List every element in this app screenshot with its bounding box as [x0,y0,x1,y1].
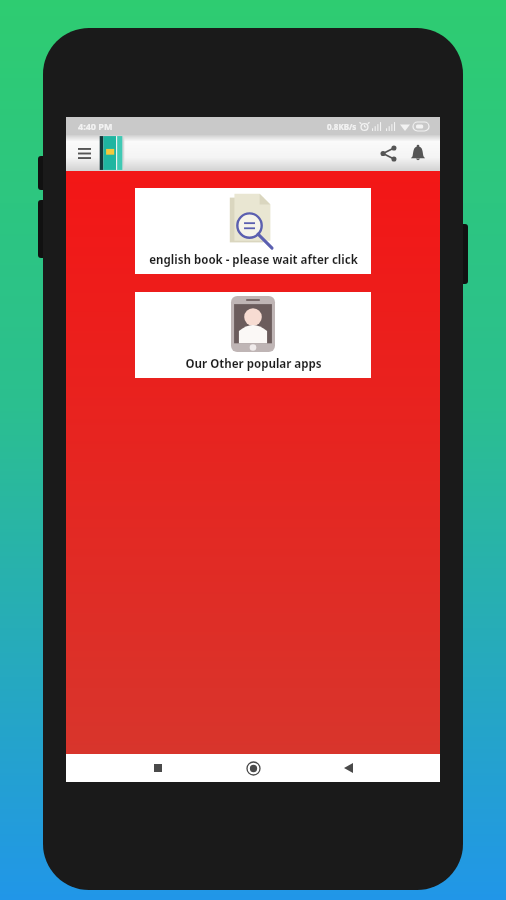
button[interactable]: Our Other popular apps [135,292,371,378]
button[interactable]: Menu [73,142,95,164]
staticText: 4:40 PM [78,120,113,132]
button[interactable]: Home [240,755,266,781]
button[interactable]: Recent apps [145,755,171,781]
staticText: Our Other popular apps [185,356,322,372]
staticText: 0.8KB/s [327,121,357,132]
button[interactable]: english book - please wait after click [135,188,371,274]
staticText: english book - please wait after click [149,252,358,268]
button[interactable]: Share [373,138,403,168]
button[interactable]: Back [335,755,361,781]
button[interactable]: Notifications [403,138,433,168]
button[interactable]: App logo [97,135,127,171]
